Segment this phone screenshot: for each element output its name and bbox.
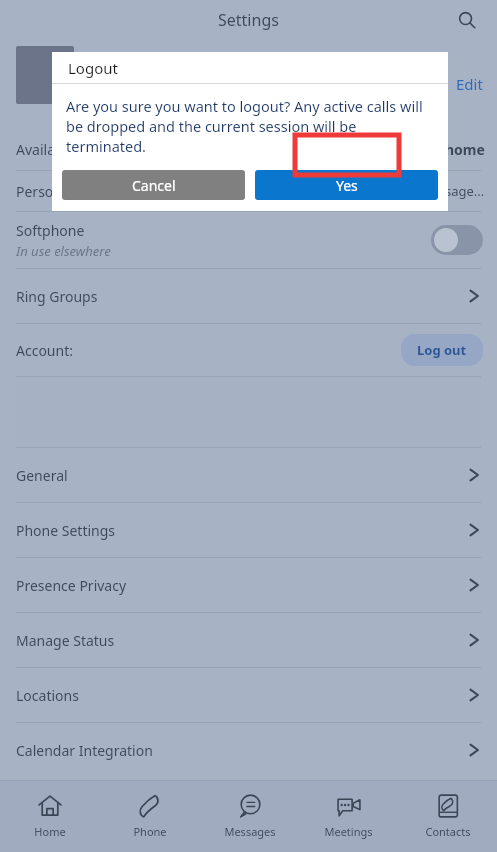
button[interactable]: Contacts <box>398 780 497 852</box>
staticText: Personal Message: <box>16 182 140 201</box>
button[interactable]: Softphone <box>0 212 497 268</box>
button[interactable]: Edit <box>456 74 483 94</box>
staticText: Logout <box>68 58 118 78</box>
button[interactable]: Log out <box>401 334 483 366</box>
button[interactable]: Availa <box>0 128 497 170</box>
staticText: Meetings <box>324 824 373 839</box>
button[interactable]: Messages <box>200 780 299 852</box>
staticText: Availa <box>16 140 55 159</box>
button[interactable]: General <box>0 448 497 502</box>
staticText: home <box>445 140 485 159</box>
staticText: Are you sure you want to logout? Any act… <box>66 96 434 156</box>
staticText: Home <box>34 824 66 839</box>
staticText: Phone <box>133 824 167 839</box>
staticText: Presence Privacy <box>16 576 127 595</box>
staticText: Softphone <box>16 221 85 240</box>
staticText: Your personal message... <box>331 182 485 200</box>
staticText: Account: <box>16 341 73 360</box>
button[interactable]: Search <box>449 2 485 38</box>
staticText: Messages <box>224 824 276 839</box>
button[interactable]: Personal Message: <box>0 171 497 211</box>
staticText: General <box>16 466 68 485</box>
staticText: Yes <box>336 176 358 195</box>
button[interactable]: Manage Status <box>0 613 497 667</box>
button[interactable]: Home <box>0 780 100 852</box>
button[interactable]: Ring Groups <box>0 269 497 323</box>
staticText: In use elsewhere <box>16 242 111 260</box>
staticText: Locations <box>16 686 79 705</box>
staticText: Cancel <box>132 176 176 195</box>
staticText: Manage Status <box>16 631 115 650</box>
button[interactable]: Yes <box>255 170 438 200</box>
button[interactable]: Phone <box>100 780 200 852</box>
button[interactable]: Meetings <box>299 780 398 852</box>
button[interactable]: Cancel <box>62 170 245 200</box>
button[interactable]: Phone Settings <box>0 503 497 557</box>
button[interactable]: Locations <box>0 668 497 722</box>
button[interactable]: Calendar Integration <box>0 723 497 777</box>
staticText: Settings <box>218 9 279 31</box>
staticText: Ring Groups <box>16 287 98 306</box>
staticText: Calendar Integration <box>16 741 153 760</box>
staticText: Contacts <box>425 824 471 839</box>
staticText: Phone Settings <box>16 521 116 540</box>
staticText: Log out <box>417 341 467 359</box>
button[interactable]: Presence Privacy <box>0 558 497 612</box>
